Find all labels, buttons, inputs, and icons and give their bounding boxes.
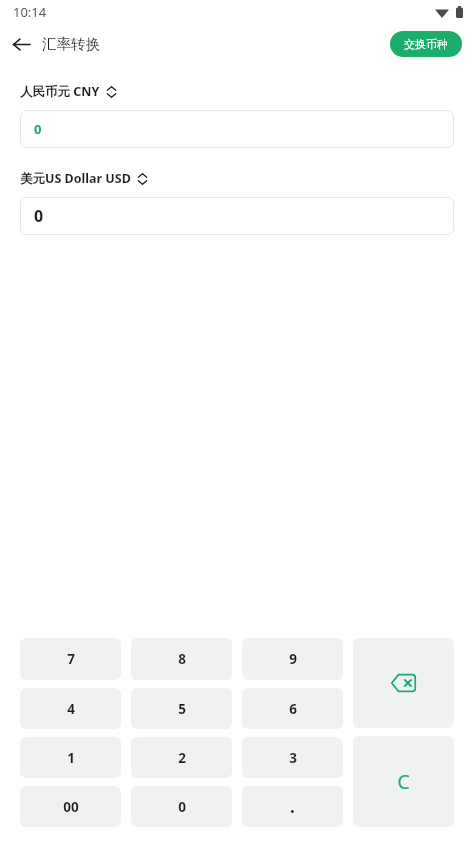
staticText: 00 <box>63 798 79 816</box>
staticText: 3 <box>289 749 297 767</box>
button[interactable]: 9 <box>242 638 343 680</box>
button[interactable]: 交换币种 <box>390 31 462 57</box>
button[interactable]: 8 <box>131 638 232 680</box>
staticText: 0 <box>34 120 42 138</box>
button[interactable]: Backspace <box>353 638 454 728</box>
staticText: 汇率转换 <box>42 35 100 53</box>
staticText: 8 <box>178 650 186 668</box>
staticText: 交换币种 <box>404 37 448 51</box>
button[interactable]: 美元US Dollar USD <box>20 170 147 187</box>
staticText: 0 <box>178 798 186 816</box>
staticText: 5 <box>178 700 186 718</box>
staticText: . <box>290 795 295 818</box>
staticText: 1 <box>67 749 75 767</box>
button[interactable]: 0 <box>20 110 454 148</box>
staticText: 7 <box>67 650 75 668</box>
staticText: 6 <box>289 700 297 718</box>
button[interactable]: 0 <box>20 197 454 235</box>
button[interactable]: 1 <box>20 737 121 778</box>
button[interactable]: 人民币元 CNY <box>20 83 116 100</box>
button[interactable]: 00 <box>20 786 121 827</box>
button[interactable]: C <box>353 736 454 827</box>
staticText: 人民币元 CNY <box>20 83 100 100</box>
staticText: 10:14 <box>13 3 47 21</box>
button[interactable]: 4 <box>20 688 121 729</box>
staticText: C <box>397 768 410 795</box>
staticText: 4 <box>67 700 75 718</box>
button[interactable]: . <box>242 786 343 827</box>
staticText: 0 <box>34 205 44 227</box>
staticText: 美元US Dollar USD <box>20 170 131 187</box>
button[interactable]: 0 <box>131 786 232 827</box>
staticText: 2 <box>178 749 186 767</box>
button[interactable]: Back <box>0 24 42 64</box>
button[interactable]: 6 <box>242 688 343 729</box>
staticText: 9 <box>289 650 297 668</box>
button[interactable]: 7 <box>20 638 121 680</box>
button[interactable]: 2 <box>131 737 232 778</box>
button[interactable]: 5 <box>131 688 232 729</box>
button[interactable]: 3 <box>242 737 343 778</box>
